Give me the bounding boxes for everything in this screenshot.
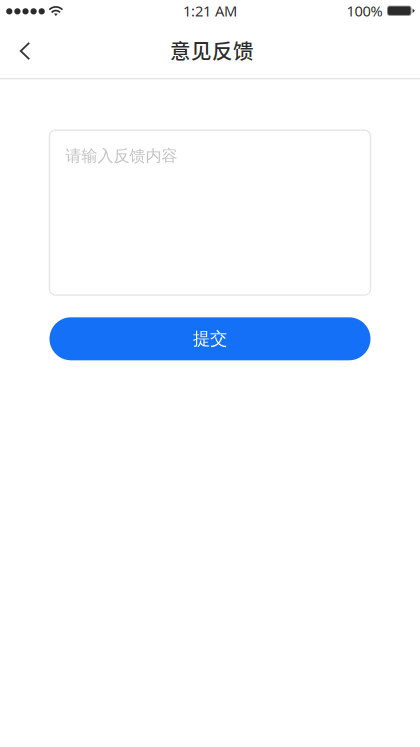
staticText: 100% — [346, 1, 382, 20]
staticText: 请输入反馈内容 — [65, 146, 177, 166]
staticText: 1:21 AM — [183, 1, 237, 20]
staticText: 提交 — [193, 328, 227, 349]
staticText: 意见反馈 — [170, 35, 254, 65]
button[interactable]: Back — [0, 24, 46, 78]
button[interactable]: 请输入反馈内容 — [49, 130, 370, 295]
button[interactable]: 提交 — [49, 317, 370, 360]
